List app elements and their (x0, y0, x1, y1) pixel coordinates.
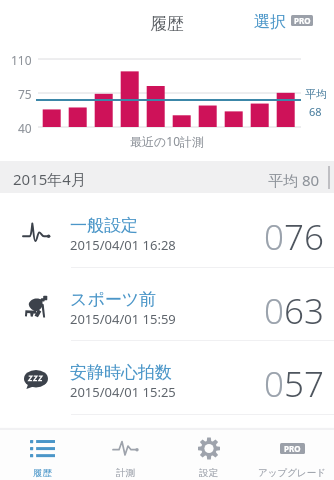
staticText: 40 (18, 120, 32, 136)
button[interactable]: 選択 (252, 10, 315, 34)
button[interactable]: 設定 (167, 427, 250, 480)
button[interactable]: アップグレード (250, 427, 334, 480)
staticText: 110 (11, 52, 32, 68)
staticText: 57 (284, 360, 324, 408)
button[interactable]: 安静時心拍数 (0, 340, 334, 414)
staticText: PRO (284, 443, 301, 454)
button[interactable]: スポーツ前 (0, 267, 334, 341)
staticText: 0 (264, 287, 284, 335)
button[interactable]: 一般設定 (0, 193, 334, 267)
staticText: 履歴 (33, 467, 52, 479)
staticText: 0 (264, 213, 284, 261)
staticText: 履歴 (0, 13, 334, 34)
staticText: 68 (309, 104, 322, 119)
button[interactable]: 計測 (84, 427, 167, 480)
staticText: 計測 (116, 467, 135, 479)
staticText: スポーツ前 (70, 289, 157, 310)
staticText: 設定 (199, 467, 218, 479)
staticText: 0 (264, 360, 284, 408)
staticText: 2015/04/01 15:59 (70, 310, 176, 328)
staticText: 63 (284, 287, 324, 335)
staticText: 2015年4月 (13, 169, 86, 189)
button[interactable]: 履歴 (0, 427, 84, 480)
staticText: 最近の10計測 (130, 133, 205, 149)
staticText: 選択 (254, 12, 286, 32)
staticText: 安静時心拍数 (70, 362, 172, 383)
staticText: 平均 80 (268, 170, 320, 190)
staticText: 平均 (305, 87, 327, 101)
staticText: 75 (18, 86, 32, 102)
staticText: PRO (294, 15, 311, 26)
staticText: 一般設定 (70, 215, 138, 236)
staticText: アップグレード (258, 467, 326, 479)
staticText: 76 (284, 213, 324, 261)
staticText: 2015/04/01 15:25 (70, 383, 176, 401)
staticText: 2015/04/01 16:28 (70, 236, 176, 254)
